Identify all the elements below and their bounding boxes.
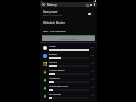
staticText: 44% [90,46,94,48]
staticText: Chrome [49,61,57,64]
button[interactable]: Screen [40,44,97,52]
staticText: approx 14h battery life [43,14,63,16]
button[interactable]: Browser [40,52,97,60]
button[interactable]: Anti-spyware Alarm [40,84,97,92]
staticText: 3% [90,94,94,96]
staticText: 7% [90,78,94,80]
staticText: 89% - Not charging [43,29,66,32]
button[interactable]: Battery details [89,3,93,7]
button[interactable]: Save power [40,7,97,19]
staticText: Wakelock Blocker [43,21,66,25]
staticText: Browser [49,53,58,56]
staticText: 9% [90,70,94,72]
staticText: Screen [49,45,56,48]
staticText: Save power [43,10,58,14]
button[interactable]: Back [41,2,46,7]
staticText: 1h 44m 12s on battery [59,38,78,40]
staticText: Anti-spyware Alarm [49,85,69,88]
button[interactable]: Android System [40,68,97,76]
staticText: 19% [90,54,94,56]
button[interactable]: Chrome [40,60,97,68]
staticText: 4% [90,86,94,88]
staticText: Battery [47,3,57,7]
button[interactable]: Cell standby [40,92,97,100]
button[interactable]: More options [93,3,96,6]
button[interactable]: Refresh [85,3,89,7]
staticText: Android OS [49,77,61,80]
button[interactable]: Android OS [40,76,97,84]
button[interactable]: Wakelock Blocker [40,19,97,26]
staticText: Android System [49,69,65,72]
staticText: 13% [90,62,94,64]
staticText: Cell standby [49,93,61,96]
